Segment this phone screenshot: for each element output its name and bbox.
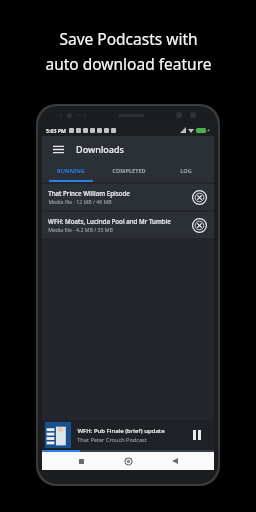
staticText: COMPLETED (112, 167, 146, 175)
button[interactable]: LOG (157, 162, 214, 180)
button[interactable]: That Prince William Episode (42, 184, 214, 210)
staticText: 5:03 PM (46, 127, 66, 134)
staticText: auto download feature (45, 53, 212, 74)
staticText: That Peter Crouch Podcast (77, 436, 147, 444)
staticText: LOG (180, 167, 192, 175)
button[interactable]: WFH: Pub Finale (brief) update (42, 420, 214, 450)
staticText: Downloads (76, 143, 124, 155)
button[interactable]: Open navigation menu (50, 141, 66, 157)
staticText: Save Podcasts with (59, 28, 198, 49)
staticText: WFH: Moats, Lucinda Pool and Mr Tumble (48, 217, 171, 225)
staticText: Media file · 4.2 MB / 35 MB (48, 226, 113, 233)
button[interactable]: Back (167, 453, 183, 469)
staticText: WFH: Pub Finale (brief) update (77, 427, 165, 435)
button[interactable]: WFH: Moats, Lucinda Pool and Mr Tumble (42, 212, 214, 238)
button[interactable]: Cancel download (190, 216, 208, 234)
button[interactable]: Home (120, 453, 136, 469)
staticText: That Prince William Episode (48, 189, 130, 197)
button[interactable]: Pause (188, 426, 206, 444)
staticText: RUNNING (57, 167, 85, 175)
button[interactable]: RUNNING (42, 162, 100, 180)
staticText: Media file · 12 MB / 46 MB (48, 198, 112, 205)
button[interactable]: COMPLETED (100, 162, 157, 180)
button[interactable]: Recents (73, 453, 89, 469)
staticText: ⚡ (207, 128, 210, 133)
button[interactable]: Cancel download (190, 188, 208, 206)
